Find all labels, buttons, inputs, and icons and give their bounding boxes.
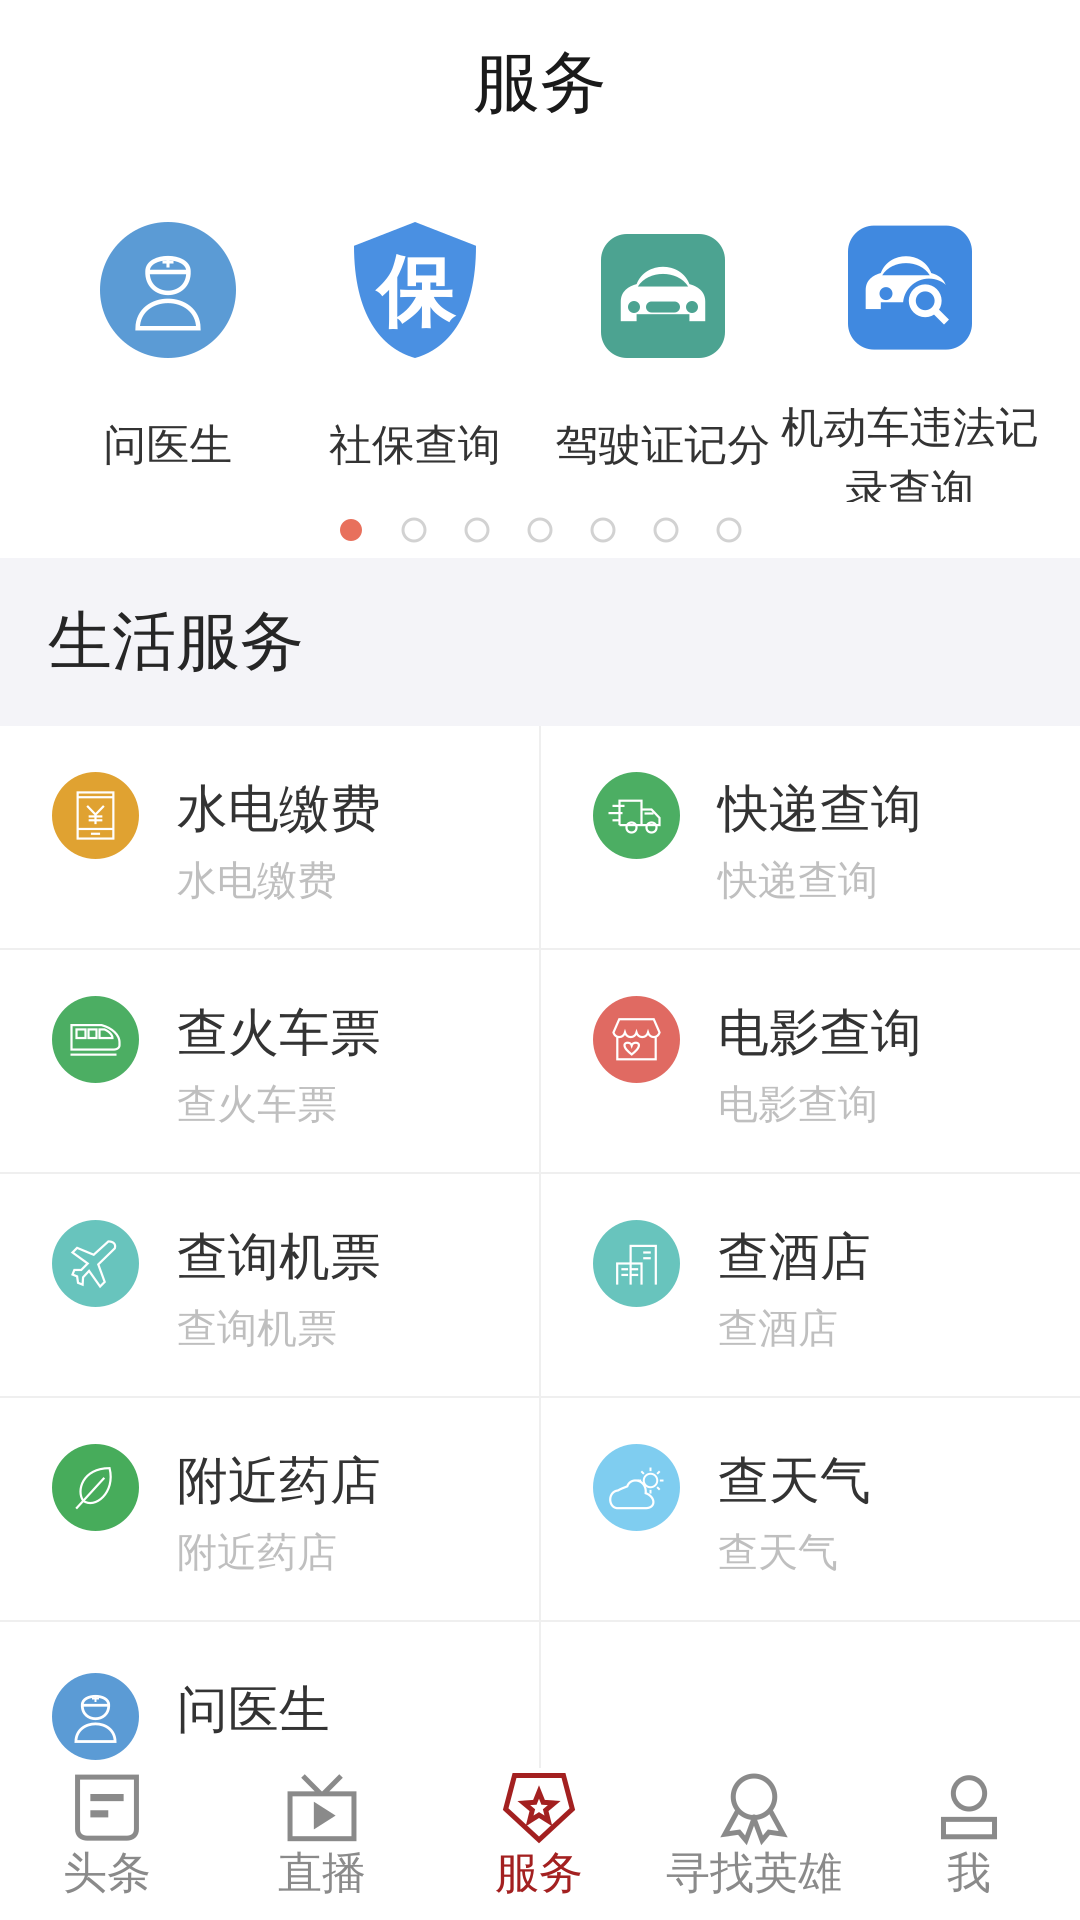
staticText: 服务 bbox=[495, 1846, 583, 1900]
staticText: 查火车票 bbox=[177, 1002, 381, 1064]
staticText: 机动车违法记 bbox=[781, 402, 1039, 454]
staticText: 水电缴费 bbox=[177, 856, 337, 905]
button[interactable]: 水电缴费 bbox=[0, 726, 539, 948]
staticText: 直播 bbox=[278, 1846, 366, 1900]
button[interactable]: 直播 bbox=[215, 1768, 429, 1920]
staticText: 查天气 bbox=[718, 1528, 838, 1577]
staticText: 快递查询 bbox=[718, 778, 922, 840]
button[interactable]: 驾驶证记分 bbox=[523, 228, 803, 508]
staticText: 生活服务 bbox=[48, 603, 304, 681]
button[interactable]: 电影查询 bbox=[541, 950, 1080, 1172]
staticText: 录查询 bbox=[845, 464, 974, 516]
button[interactable]: 查询机票 bbox=[0, 1174, 539, 1396]
staticText: 电影查询 bbox=[718, 1080, 878, 1129]
button[interactable]: 查天气 bbox=[541, 1398, 1080, 1620]
staticText: 查酒店 bbox=[718, 1226, 871, 1288]
staticText: 查酒店 bbox=[718, 1304, 838, 1353]
staticText: 查询机票 bbox=[177, 1226, 381, 1288]
staticText: 电影查询 bbox=[718, 1002, 922, 1064]
staticText: 我 bbox=[947, 1846, 991, 1900]
staticText: 查天气 bbox=[718, 1450, 871, 1512]
button[interactable]: 我 bbox=[862, 1768, 1076, 1920]
button[interactable]: 服务 bbox=[432, 1768, 646, 1920]
staticText: 服务 bbox=[473, 42, 607, 124]
staticText: 社保查询 bbox=[329, 419, 501, 471]
button[interactable]: 头条 bbox=[0, 1768, 214, 1920]
button[interactable]: 附近药店 bbox=[0, 1398, 539, 1620]
button[interactable]: 查酒店 bbox=[541, 1174, 1080, 1396]
button[interactable]: 查火车票 bbox=[0, 950, 539, 1172]
button[interactable]: 问医生 bbox=[0, 1622, 539, 1768]
button[interactable]: 保 bbox=[275, 222, 555, 502]
staticText: 寻找英雄 bbox=[666, 1846, 842, 1900]
staticText: 查询机票 bbox=[177, 1304, 337, 1353]
button[interactable]: 寻找英雄 bbox=[647, 1768, 861, 1920]
staticText: 保 bbox=[376, 245, 453, 340]
staticText: 查火车票 bbox=[177, 1080, 337, 1129]
button[interactable]: 快递查询 bbox=[541, 726, 1080, 948]
staticText: 头条 bbox=[63, 1846, 151, 1900]
button[interactable]: 机动车违法记 bbox=[770, 228, 1050, 508]
staticText: 驾驶证记分 bbox=[555, 419, 770, 471]
staticText: 快递查询 bbox=[718, 856, 878, 905]
button[interactable]: 问医生 bbox=[28, 222, 308, 502]
staticText: 附近药店 bbox=[177, 1528, 337, 1577]
staticText: 附近药店 bbox=[177, 1450, 381, 1512]
staticText: 问医生 bbox=[177, 1679, 330, 1741]
staticText: 水电缴费 bbox=[177, 778, 381, 840]
staticText: 问医生 bbox=[103, 419, 232, 471]
